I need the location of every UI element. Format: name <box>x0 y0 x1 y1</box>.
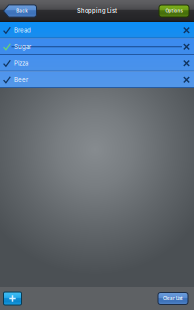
button[interactable]: Clear List <box>158 292 188 304</box>
button[interactable]: Add item <box>3 292 21 305</box>
button[interactable]: Bread <box>0 22 194 38</box>
button[interactable]: Options <box>159 5 189 17</box>
staticText: Beer <box>14 76 28 83</box>
staticText: Back <box>16 8 28 14</box>
staticText: Shopping List <box>77 7 117 14</box>
button[interactable]: Sugar <box>0 38 194 55</box>
staticText: Clear List <box>163 296 183 301</box>
button[interactable]: Pizza <box>0 55 194 71</box>
staticText: Sugar <box>14 43 31 50</box>
button[interactable]: Back <box>2 4 37 18</box>
button[interactable]: Beer <box>0 71 194 88</box>
staticText: Bread <box>14 26 31 34</box>
staticText: Pizza <box>14 59 28 67</box>
staticText: Options <box>165 8 182 14</box>
